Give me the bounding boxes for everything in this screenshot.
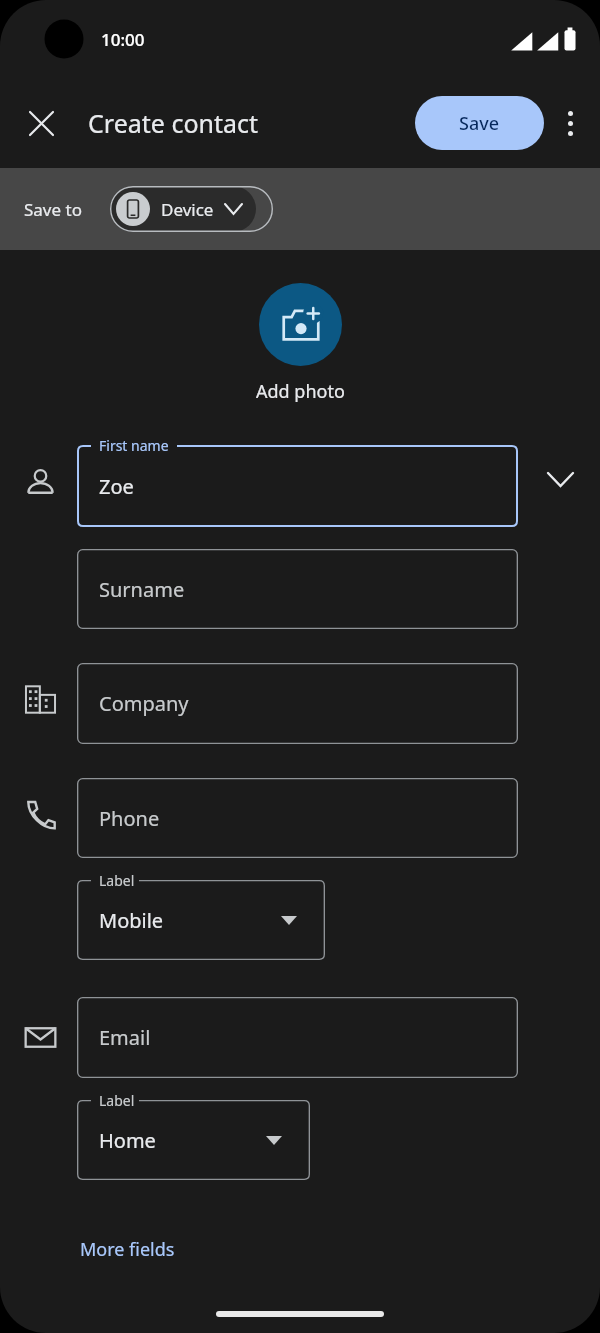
staticText: Phone	[99, 805, 160, 832]
button[interactable]: Close	[17, 99, 65, 147]
staticText: Mobile	[99, 907, 164, 934]
staticText: Device	[161, 198, 214, 221]
staticText: First name	[99, 436, 169, 455]
staticText: Email	[99, 1024, 151, 1051]
button[interactable]: Save	[415, 96, 544, 150]
button[interactable]: Device	[110, 186, 256, 232]
button[interactable]: More options	[547, 100, 593, 146]
staticText: 10:00	[101, 28, 145, 51]
button[interactable]: First name	[77, 445, 518, 527]
staticText: More fields	[80, 1237, 175, 1262]
staticText: Home	[99, 1127, 156, 1154]
staticText: Save	[459, 111, 500, 136]
button[interactable]: Email	[77, 997, 518, 1078]
staticText: Add photo	[256, 379, 345, 404]
staticText: Create contact	[88, 106, 259, 140]
button[interactable]: More fields	[64, 1229, 191, 1270]
button[interactable]: Company	[77, 663, 518, 744]
staticText: Company	[99, 690, 189, 717]
staticText: Zoe	[99, 473, 134, 500]
staticText: Save to	[24, 198, 82, 221]
button[interactable]: Label	[77, 880, 325, 960]
button[interactable]: Surname	[77, 549, 518, 629]
button[interactable]: Expand name fields	[533, 452, 587, 506]
button[interactable]: Label	[77, 1100, 310, 1180]
button[interactable]: Add photo	[259, 283, 342, 366]
button[interactable]: Phone	[77, 778, 518, 858]
staticText: Label	[99, 871, 135, 890]
staticText: Label	[99, 1091, 135, 1110]
staticText: Surname	[99, 576, 185, 603]
